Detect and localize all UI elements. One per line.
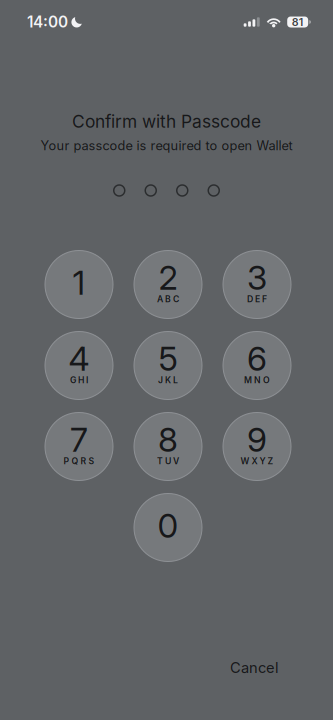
button[interactable]: 5 xyxy=(134,331,202,399)
staticText: D E F xyxy=(247,294,267,304)
staticText: A B C xyxy=(157,294,179,304)
staticText: G H I xyxy=(70,375,88,385)
staticText: P Q R S xyxy=(63,456,94,466)
button[interactable]: 4 xyxy=(45,331,113,399)
staticText: Confirm with Passcode xyxy=(72,111,261,132)
staticText: 6 xyxy=(247,338,267,379)
button[interactable]: 0 xyxy=(134,493,202,561)
button[interactable]: 6 xyxy=(223,331,291,399)
staticText: 81 xyxy=(292,15,304,28)
staticText: T U V xyxy=(157,456,179,466)
staticText: 0 xyxy=(157,505,178,546)
button[interactable]: 9 xyxy=(223,412,291,480)
staticText: 2 xyxy=(158,257,177,298)
staticText: J K L xyxy=(158,375,178,385)
staticText: W X Y Z xyxy=(240,456,273,466)
button[interactable]: 8 xyxy=(134,412,202,480)
staticText: 4 xyxy=(68,338,89,379)
staticText: 7 xyxy=(70,419,88,460)
button[interactable]: 3 xyxy=(223,250,291,318)
button[interactable]: 2 xyxy=(134,250,202,318)
staticText: 5 xyxy=(158,338,177,379)
button[interactable]: Cancel xyxy=(220,652,289,683)
staticText: Your passcode is required to open Wallet xyxy=(40,138,292,153)
staticText: 9 xyxy=(247,419,267,460)
staticText: Cancel xyxy=(230,659,279,676)
staticText: 3 xyxy=(247,257,267,298)
staticText: M N O xyxy=(244,375,270,385)
staticText: 8 xyxy=(158,419,178,460)
button[interactable]: 7 xyxy=(45,412,113,480)
staticText: 1 xyxy=(72,262,85,303)
button[interactable]: 1 xyxy=(45,250,113,318)
staticText: 14:00 xyxy=(27,13,68,31)
